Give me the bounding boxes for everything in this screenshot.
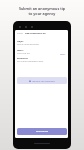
staticText: Select [60,53,66,55]
staticText: Send The Tip [36,130,48,133]
staticText: Who is this for? [17,52,30,54]
staticText: Tell us what happened in detail [17,60,44,62]
button[interactable]: Send The Tip [17,128,67,135]
staticText: Submit an anonymous tip to your agency [4,6,80,16]
staticText: DESCRIPTION [17,57,28,59]
button[interactable]: AGENCY [15,48,68,57]
button[interactable]: Your tip is 100% anonymous [17,77,67,84]
button[interactable]: DESCRIPTION [15,56,68,65]
staticText: Your tip is 100% anonymous [32,80,55,82]
staticText: Give us a brief description [17,43,39,45]
staticText: AGENCY [17,49,24,51]
button[interactable]: SUBJECT [15,39,68,48]
staticText: Cancel [17,32,23,35]
button[interactable]: Back [17,32,23,35]
staticText: New Anonymous Tip [25,32,46,35]
staticText: SUBJECT [17,40,24,42]
